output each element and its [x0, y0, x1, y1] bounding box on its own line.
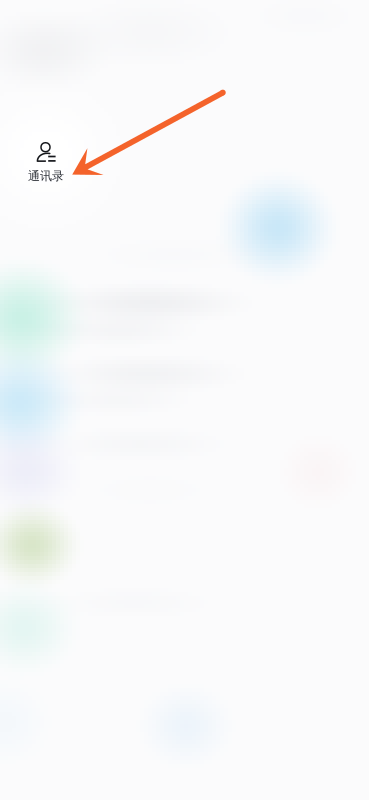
button[interactable]: 通讯录 [0, 0, 369, 800]
staticText: 通讯录 [28, 168, 64, 183]
